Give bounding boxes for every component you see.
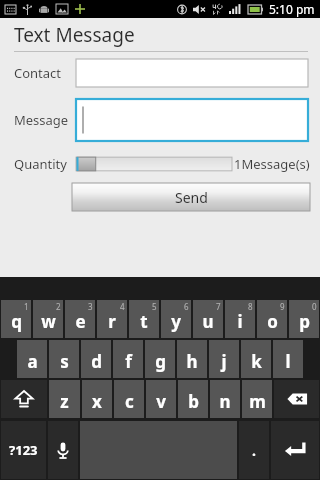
- staticText: l: [285, 350, 291, 373]
- button[interactable]: t: [129, 300, 159, 338]
- staticText: d: [91, 350, 102, 373]
- staticText: ?123: [9, 441, 38, 459]
- button[interactable]: [76, 59, 308, 87]
- staticText: 9: [280, 301, 285, 312]
- button[interactable]: k: [241, 340, 271, 378]
- button[interactable]: Shift: [1, 380, 47, 418]
- staticText: Contact: [14, 64, 76, 82]
- staticText: 4: [120, 301, 125, 312]
- staticText: Send: [175, 188, 208, 207]
- staticText: p: [299, 310, 310, 333]
- button[interactable]: ?123: [1, 421, 46, 479]
- staticText: e: [75, 310, 86, 333]
- staticText: b: [188, 390, 199, 413]
- staticText: x: [92, 390, 102, 413]
- button[interactable]: w: [33, 300, 63, 338]
- staticText: c: [125, 390, 134, 413]
- button[interactable]: p: [289, 300, 319, 338]
- button[interactable]: a: [17, 340, 47, 378]
- staticText: 8: [248, 301, 253, 312]
- button[interactable]: c: [114, 380, 144, 418]
- button[interactable]: [76, 99, 308, 141]
- staticText: s: [60, 350, 69, 373]
- staticText: Message: [14, 111, 76, 129]
- button[interactable]: j: [209, 340, 239, 378]
- button[interactable]: .: [239, 421, 269, 479]
- button[interactable]: y: [161, 300, 191, 338]
- button[interactable]: u: [193, 300, 223, 338]
- staticText: 6: [184, 301, 189, 312]
- staticText: r: [108, 310, 116, 333]
- button[interactable]: d: [81, 340, 111, 378]
- staticText: w: [41, 310, 56, 333]
- button[interactable]: s: [49, 340, 79, 378]
- staticText: f: [125, 350, 132, 373]
- button[interactable]: e: [65, 300, 95, 338]
- staticText: 1: [24, 301, 29, 312]
- staticText: 5: [152, 301, 157, 312]
- staticText: y: [171, 310, 181, 333]
- staticText: i: [237, 310, 243, 333]
- staticText: 5:10 pm: [269, 1, 315, 17]
- staticText: t: [140, 310, 148, 333]
- staticText: h: [186, 350, 198, 373]
- button[interactable]: Voice input: [48, 421, 78, 479]
- button[interactable]: b: [178, 380, 208, 418]
- staticText: g: [155, 350, 166, 373]
- button[interactable]: [76, 155, 232, 173]
- button[interactable]: f: [113, 340, 143, 378]
- staticText: 1Message(s): [234, 155, 310, 173]
- button[interactable]: q: [1, 300, 31, 338]
- staticText: n: [219, 390, 231, 413]
- staticText: Quantity: [14, 155, 76, 173]
- button[interactable]: v: [146, 380, 176, 418]
- button[interactable]: m: [242, 380, 272, 418]
- button[interactable]: l: [273, 340, 303, 378]
- button[interactable]: Backspace: [274, 380, 319, 418]
- staticText: Text Message: [14, 22, 135, 48]
- staticText: 0: [312, 301, 317, 312]
- staticText: v: [156, 390, 166, 413]
- button[interactable]: Enter: [271, 421, 319, 479]
- button[interactable]: i: [225, 300, 255, 338]
- staticText: o: [267, 310, 278, 333]
- button[interactable]: z: [49, 380, 80, 418]
- staticText: 3: [88, 301, 93, 312]
- staticText: m: [249, 390, 266, 413]
- staticText: k: [251, 350, 262, 373]
- staticText: 2: [56, 301, 61, 312]
- staticText: u: [202, 310, 214, 333]
- staticText: 7: [216, 301, 221, 312]
- button[interactable]: r: [97, 300, 127, 338]
- staticText: .: [252, 441, 256, 460]
- staticText: z: [60, 390, 69, 413]
- button[interactable]: g: [145, 340, 175, 378]
- staticText: j: [221, 350, 227, 373]
- staticText: q: [11, 310, 22, 333]
- button[interactable]: x: [82, 380, 112, 418]
- button[interactable]: o: [257, 300, 287, 338]
- button[interactable]: h: [177, 340, 207, 378]
- button[interactable]: n: [210, 380, 240, 418]
- button[interactable]: Send: [72, 183, 310, 211]
- staticText: a: [27, 350, 38, 373]
